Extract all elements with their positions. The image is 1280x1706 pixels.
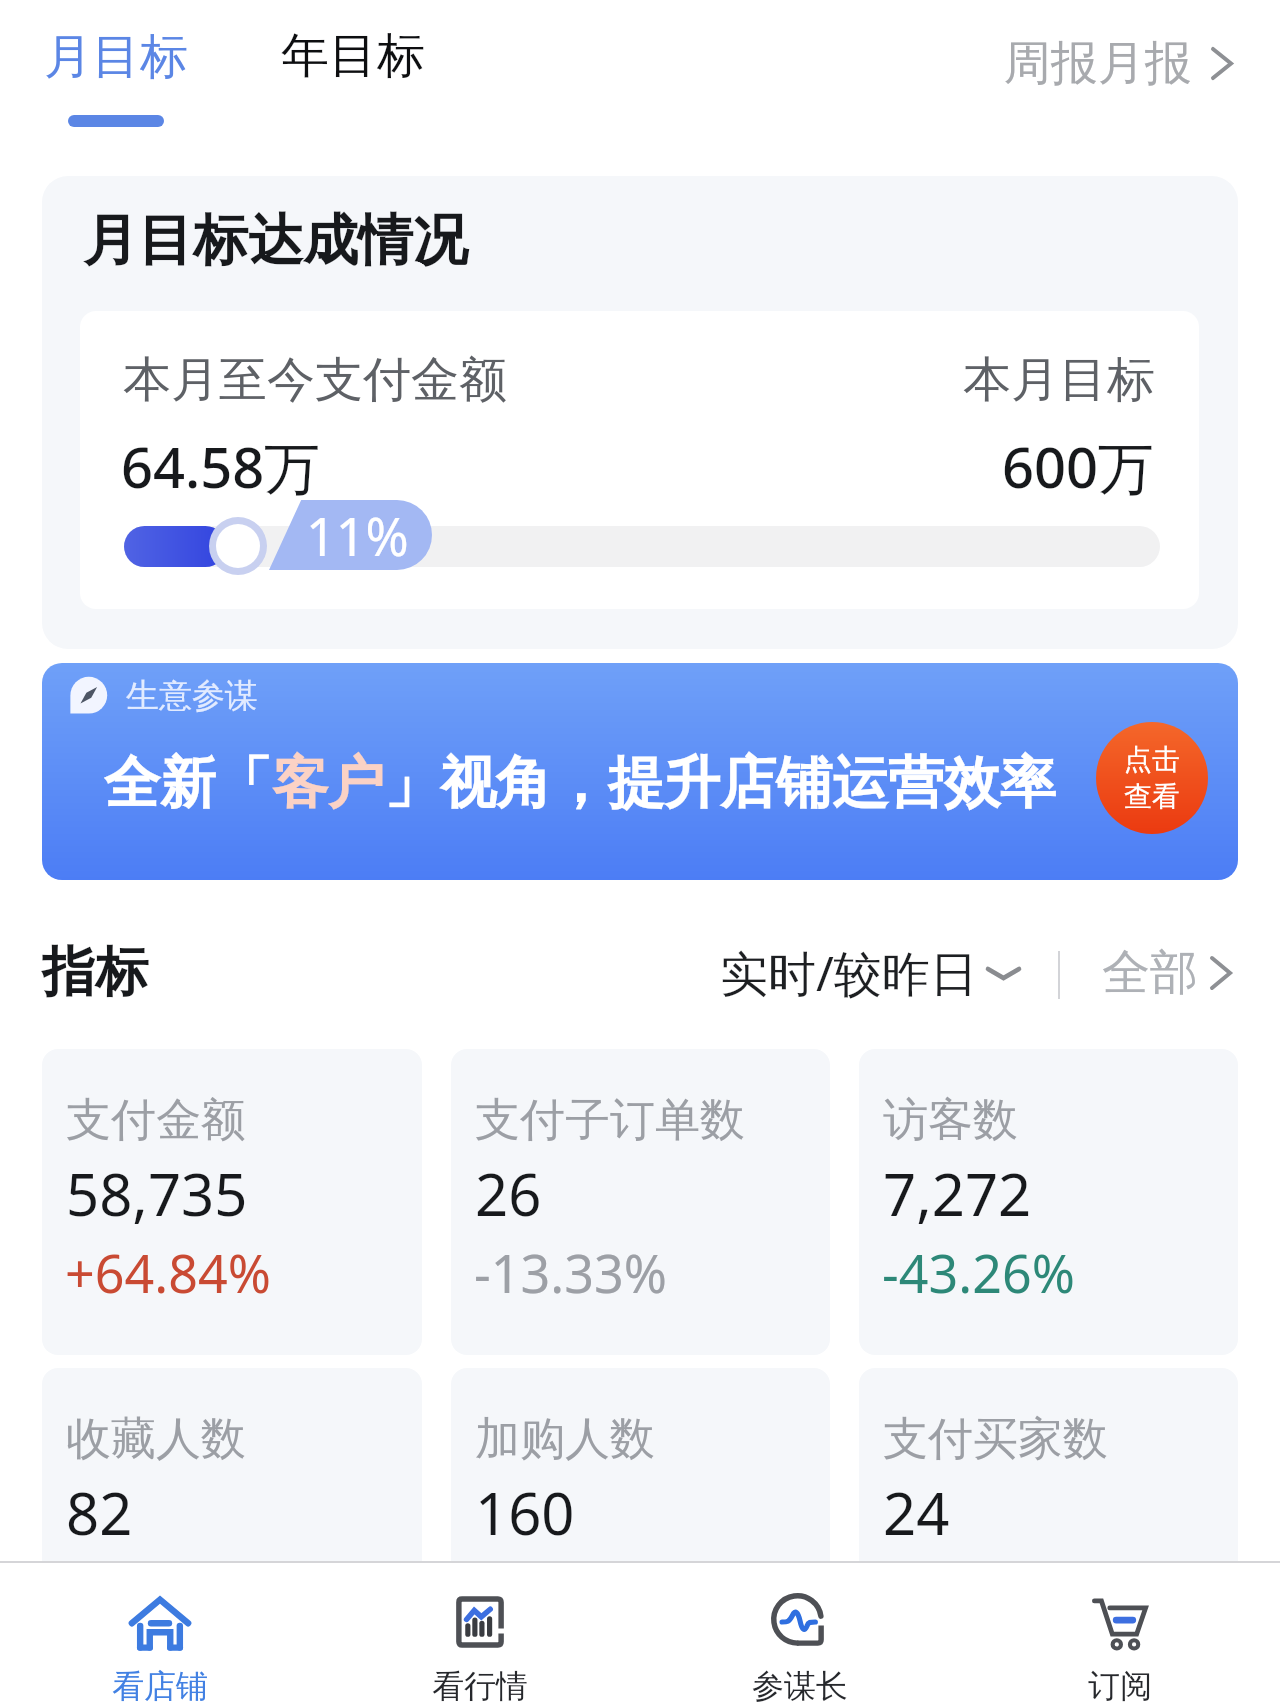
staticText: 月目标 [44,27,188,87]
button[interactable]: 支付买家数 [859,1368,1238,1674]
staticText: 收藏人数 [66,1411,246,1468]
button[interactable]: 收藏人数 [42,1368,422,1674]
staticText: -43.26% [882,1237,1075,1308]
button[interactable]: 实时/较昨日 [720,940,1019,1006]
staticText: 本月至今支付金额 [123,350,507,410]
button[interactable]: 看店铺 [0,1563,320,1706]
button[interactable]: 周报月报 [1004,34,1231,93]
staticText: 看店铺 [112,1666,208,1706]
other: 参谋长 [768,1590,832,1654]
button[interactable]: 月目标达成情况 [42,176,1238,649]
button[interactable]: 看行情 [320,1563,640,1706]
staticText: 看行情 [432,1666,528,1706]
button[interactable]: 访客数 [859,1049,1238,1355]
button[interactable]: 年目标 [281,26,425,86]
button[interactable]: 生意参谋 [42,663,1238,880]
staticText: 82 [66,1473,133,1552]
staticText: +64.84% [65,1237,271,1308]
staticText: 参谋长 [752,1666,848,1706]
staticText: 」视角，提升店铺运营效率 [384,748,1056,819]
staticText: 160 [475,1473,575,1552]
button[interactable]: 加购人数 [451,1368,830,1674]
staticText: 加购人数 [475,1411,655,1468]
staticText: 58,735 [66,1154,248,1233]
other: 看店铺 [128,1590,192,1654]
staticText: 7,272 [883,1154,1032,1233]
button[interactable]: 参谋长 [640,1563,960,1706]
button[interactable]: 支付金额 [42,1049,422,1355]
staticText: 年目标 [281,26,425,86]
staticText: 本月目标 [963,350,1155,410]
staticText: 周报月报 [1004,34,1192,93]
staticText: 支付买家数 [883,1411,1108,1468]
button[interactable]: 订阅 [960,1563,1280,1706]
staticText: 64.58万 [121,428,321,504]
other: 订阅 [1088,1590,1152,1654]
button[interactable]: 点击 [1096,722,1208,834]
staticText: 指标 [42,939,148,1006]
button[interactable]: 支付子订单数 [451,1049,830,1355]
staticText: 全新「 [104,748,272,819]
staticText: 支付金额 [66,1092,246,1149]
staticText: 实时/较昨日 [720,940,978,1006]
staticText: 600万 [1002,428,1155,504]
button[interactable]: 全部 [1102,943,1230,1003]
other: 看行情 [448,1590,512,1654]
staticText: -13.33% [474,1237,667,1308]
staticText: 26 [475,1154,542,1233]
staticText: 24 [883,1473,950,1552]
staticText: 全部 [1102,943,1198,1003]
staticText: 11% [306,500,409,570]
staticText: 查看 [1124,779,1180,814]
staticText: 访客数 [883,1092,1018,1149]
staticText: 订阅 [1088,1666,1152,1706]
button[interactable]: 月目标 [39,27,193,127]
staticText: 点击 [1124,742,1180,777]
staticText: 支付子订单数 [475,1092,745,1149]
staticText: 月目标达成情况 [83,206,468,275]
staticText: 生意参谋 [126,675,258,717]
staticText: 客户 [272,748,384,819]
